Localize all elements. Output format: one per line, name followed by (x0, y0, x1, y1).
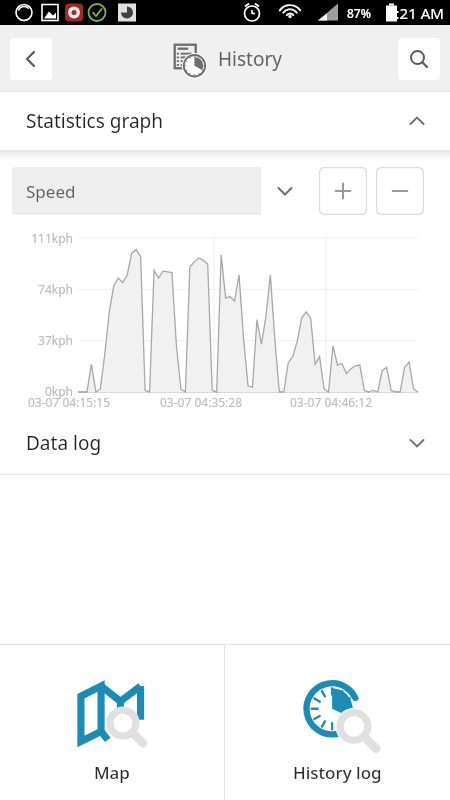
staticText: 0kph (44, 383, 73, 399)
staticText: 03-07 04:46:12 (290, 394, 373, 410)
staticText: Statistics graph (26, 108, 163, 134)
button[interactable]: Zoom in (319, 167, 367, 215)
staticText: 37kph (38, 332, 73, 348)
staticText: 87% (347, 5, 371, 21)
button[interactable]: Map (0, 645, 224, 800)
staticText: 03-07 04:15:15 (28, 394, 111, 410)
staticText: 9:21 AM (387, 3, 444, 23)
staticText: Data log (26, 430, 102, 456)
button[interactable]: Search (398, 38, 440, 80)
button[interactable]: Zoom out (376, 167, 424, 215)
staticText: History log (293, 761, 382, 784)
button[interactable]: Statistics graph (0, 92, 450, 150)
button[interactable]: Speed (12, 167, 309, 215)
staticText: 03-07 04:35:28 (160, 394, 243, 410)
staticText: 111kph (31, 230, 73, 246)
staticText: 74kph (38, 281, 73, 297)
staticText: Map (94, 761, 130, 784)
button[interactable]: History log (225, 645, 450, 800)
button[interactable]: Back (10, 38, 52, 80)
button[interactable]: Data log (0, 412, 450, 474)
staticText: History (218, 46, 282, 72)
staticText: Speed (26, 180, 261, 203)
